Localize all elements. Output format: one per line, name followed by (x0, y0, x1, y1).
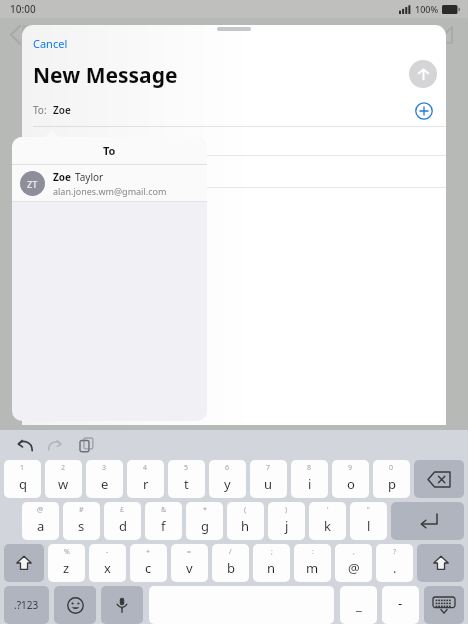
staticText: n (267, 559, 276, 577)
staticText: 0 (389, 463, 394, 473)
button[interactable]: ' (309, 502, 346, 540)
staticText: = (187, 547, 192, 557)
staticText: 1 (20, 463, 25, 473)
button[interactable]: + (130, 544, 167, 582)
staticText: g (201, 517, 209, 535)
staticText: 4 (143, 463, 148, 473)
staticText: k (324, 517, 331, 535)
staticText: t (184, 475, 189, 493)
staticText: 8 (307, 463, 312, 473)
staticText: Cancel (33, 36, 68, 51)
button[interactable]: & (145, 502, 182, 540)
staticText: * (203, 505, 207, 515)
button[interactable]: - (89, 544, 126, 582)
staticText: To: (33, 103, 47, 117)
button[interactable]: Hide keyboard (424, 586, 464, 624)
button[interactable]: Send (409, 60, 437, 88)
staticText: c (145, 559, 152, 577)
staticText: - (106, 547, 109, 557)
button[interactable]: _ (340, 586, 377, 624)
button[interactable]: - (382, 586, 419, 624)
button[interactable]: Emoji (54, 586, 96, 624)
button[interactable]: Return (391, 502, 464, 540)
button[interactable]: @ (22, 502, 59, 540)
button[interactable]: % (48, 544, 85, 582)
staticText: ( (244, 505, 247, 515)
button[interactable]: 1 (4, 460, 41, 498)
button[interactable]: 3 (86, 460, 123, 498)
staticText: p (388, 475, 396, 493)
staticText: 10:00 (10, 2, 36, 16)
button[interactable]: Paste (74, 432, 100, 458)
staticText: u (264, 475, 273, 493)
staticText: . (393, 559, 397, 577)
button[interactable]: Cancel (26, 32, 75, 55)
staticText: _ (356, 596, 362, 614)
button[interactable]: # (63, 502, 100, 540)
staticText: £ (120, 505, 125, 515)
button[interactable]: 5 (168, 460, 205, 498)
staticText: ' (327, 505, 329, 515)
button[interactable]: 0 (373, 460, 410, 498)
button[interactable]: Shift (4, 544, 44, 582)
button[interactable]: ? (376, 544, 413, 582)
staticText: ) (285, 505, 288, 515)
staticText: Taylor (75, 170, 104, 184)
staticText: v (186, 559, 193, 577)
staticText: w (58, 475, 69, 493)
button[interactable]: Backspace (414, 460, 464, 498)
staticText: " (367, 505, 370, 515)
button[interactable]: : (294, 544, 331, 582)
button[interactable]: , (335, 544, 372, 582)
button[interactable]: ( (227, 502, 264, 540)
staticText: 7 (266, 463, 271, 473)
staticText: : (312, 547, 314, 557)
button[interactable]: * (186, 502, 223, 540)
staticText: Zoe (53, 103, 71, 117)
staticText: 9 (348, 463, 353, 473)
staticText: @ (348, 559, 360, 577)
button[interactable]: Undo (12, 432, 38, 458)
button[interactable]: 2 (45, 460, 82, 498)
staticText: b (227, 559, 235, 577)
staticText: h (241, 517, 250, 535)
staticText: l (367, 517, 371, 535)
button[interactable]: 6 (209, 460, 246, 498)
staticText: % (64, 547, 70, 557)
button[interactable]: " (350, 502, 387, 540)
staticText: s (78, 517, 85, 535)
button[interactable]: / (212, 544, 249, 582)
button[interactable]: £ (104, 502, 141, 540)
staticText: ? (393, 547, 397, 557)
button[interactable]: = (171, 544, 208, 582)
button[interactable]: 9 (332, 460, 369, 498)
button[interactable]: Add contact (413, 100, 434, 121)
staticText: , (353, 547, 355, 557)
staticText: Zoe (53, 170, 72, 184)
button[interactable]: ) (268, 502, 305, 540)
button[interactable]: 4 (127, 460, 164, 498)
button[interactable]: Shift (417, 544, 464, 582)
staticText: a (37, 517, 45, 535)
button[interactable]: 7 (250, 460, 287, 498)
staticText: New Message (33, 61, 178, 90)
button[interactable]: Dictate (101, 586, 143, 624)
staticText: x (104, 559, 111, 577)
button[interactable]: .?123 (4, 586, 49, 624)
staticText: To (103, 143, 116, 158)
staticText: z (63, 559, 70, 577)
staticText: j (285, 517, 289, 535)
button[interactable]: ZT (12, 165, 207, 201)
staticText: ZT (27, 178, 38, 190)
button[interactable]: 8 (291, 460, 328, 498)
button[interactable]: Redo (42, 432, 68, 458)
staticText: e (101, 475, 109, 493)
staticText: @ (37, 505, 44, 515)
staticText: # (79, 505, 84, 515)
button[interactable]: ; (253, 544, 290, 582)
staticText: d (119, 517, 127, 535)
staticText: y (224, 475, 231, 493)
staticText: 6 (225, 463, 230, 473)
staticText: q (19, 475, 27, 493)
